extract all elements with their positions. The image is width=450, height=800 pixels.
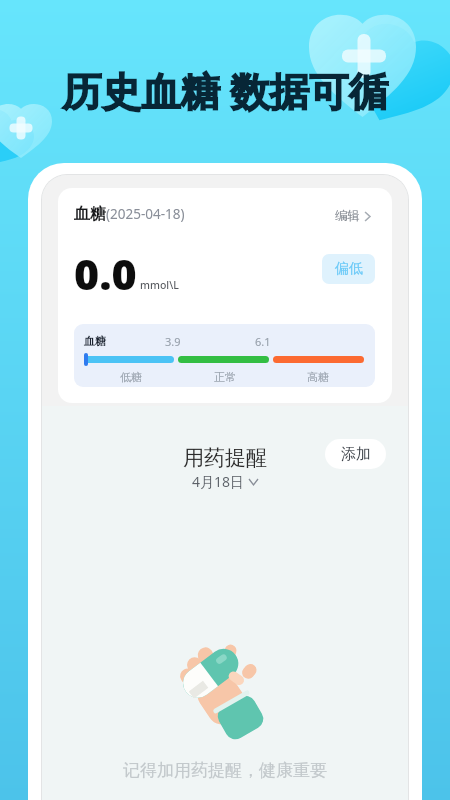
staticText: 正常 [214,370,236,384]
button[interactable]: 4月18日 [192,472,258,491]
staticText: 4月18日 [192,472,245,491]
staticText: 偏低 [335,260,363,278]
staticText: 高糖 [307,370,329,384]
staticText: 3.9 [165,334,181,349]
staticText: 6.1 [255,334,271,349]
staticText: 0.0 [74,244,137,303]
staticText: 用药提醒 [183,445,267,471]
staticText: 记得加用药提醒，健康重要 [123,760,327,781]
button[interactable]: 添加 [325,439,386,469]
staticText: mmol\L [140,278,179,292]
staticText: 血糖 [84,334,106,348]
staticText: (2025-04-18) [106,205,185,223]
staticText: 编辑 [335,208,360,224]
staticText: 历史血糖 数据可循 [62,64,389,118]
staticText: 添加 [341,445,371,464]
button[interactable]: 偏低 [322,254,375,284]
button[interactable]: 编辑 [335,208,371,224]
staticText: 低糖 [120,370,142,384]
staticText: 血糖 [74,204,106,224]
